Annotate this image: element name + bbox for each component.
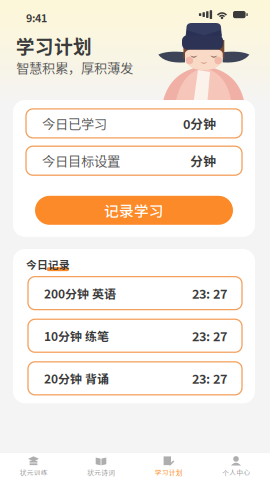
staticText: 学习计划: [16, 32, 92, 59]
staticText: 23: 27: [192, 284, 227, 302]
staticText: 20分钟 背诵: [44, 370, 109, 387]
staticText: 23: 27: [192, 369, 227, 387]
staticText: 智慧积累，厚积薄发: [16, 58, 133, 77]
button[interactable]: 今日已学习: [26, 109, 242, 138]
staticText: 分钟: [190, 151, 216, 170]
button[interactable]: 20分钟 背诵: [28, 362, 242, 395]
staticText: 记录学习: [104, 200, 164, 221]
staticText: 200分钟 英语: [44, 284, 116, 302]
button[interactable]: 记录学习: [35, 196, 233, 225]
staticText: 9:41: [26, 10, 47, 25]
staticText: 学习计划: [155, 467, 183, 477]
button[interactable]: 状元训练: [0, 453, 67, 480]
staticText: 状元诗词: [87, 467, 115, 477]
button[interactable]: 状元诗词: [67, 453, 135, 480]
staticText: 状元训练: [20, 467, 48, 477]
button[interactable]: 个人中心: [202, 453, 270, 480]
button[interactable]: 200分钟 英语: [28, 277, 242, 310]
staticText: 个人中心: [222, 467, 250, 477]
button[interactable]: 10分钟 练笔: [28, 319, 242, 352]
staticText: 23: 27: [192, 327, 227, 345]
staticText: 今日目标设置: [42, 151, 120, 170]
button[interactable]: 学习计划: [135, 453, 202, 480]
button[interactable]: 今日目标设置: [26, 146, 242, 175]
staticText: 今日已学习: [42, 114, 107, 133]
staticText: 0分钟: [183, 114, 216, 132]
staticText: 今日记录: [26, 257, 70, 272]
staticText: 10分钟 练笔: [44, 327, 109, 344]
